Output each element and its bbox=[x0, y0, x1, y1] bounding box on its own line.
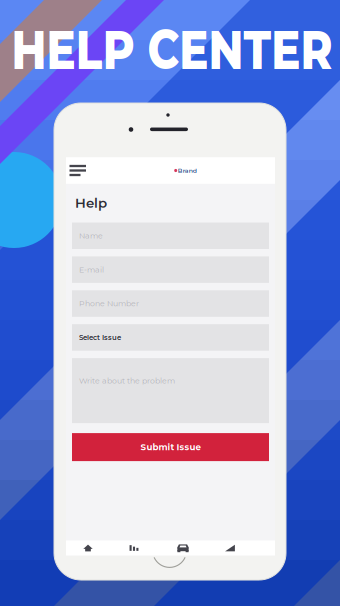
button[interactable]: Brand home bbox=[174, 157, 197, 183]
staticText: Phone Number bbox=[79, 299, 139, 308]
staticText: Help bbox=[75, 195, 107, 211]
staticText: Write about the problem bbox=[79, 376, 175, 385]
staticText: HELP CENTER bbox=[11, 17, 340, 82]
button[interactable]: Menu bbox=[69, 157, 91, 183]
button[interactable]: Vehicles bbox=[168, 540, 198, 555]
button[interactable]: Submit Issue bbox=[72, 433, 269, 461]
button[interactable]: Home bbox=[73, 540, 103, 555]
staticText: E-mail bbox=[79, 265, 104, 274]
staticText: Brand bbox=[178, 167, 197, 174]
button[interactable]: Statistics bbox=[119, 540, 149, 555]
staticText: Submit Issue bbox=[140, 442, 200, 452]
button[interactable]: Network bbox=[215, 540, 245, 555]
staticText: Select Issue bbox=[79, 333, 121, 342]
staticText: Name bbox=[79, 231, 103, 240]
